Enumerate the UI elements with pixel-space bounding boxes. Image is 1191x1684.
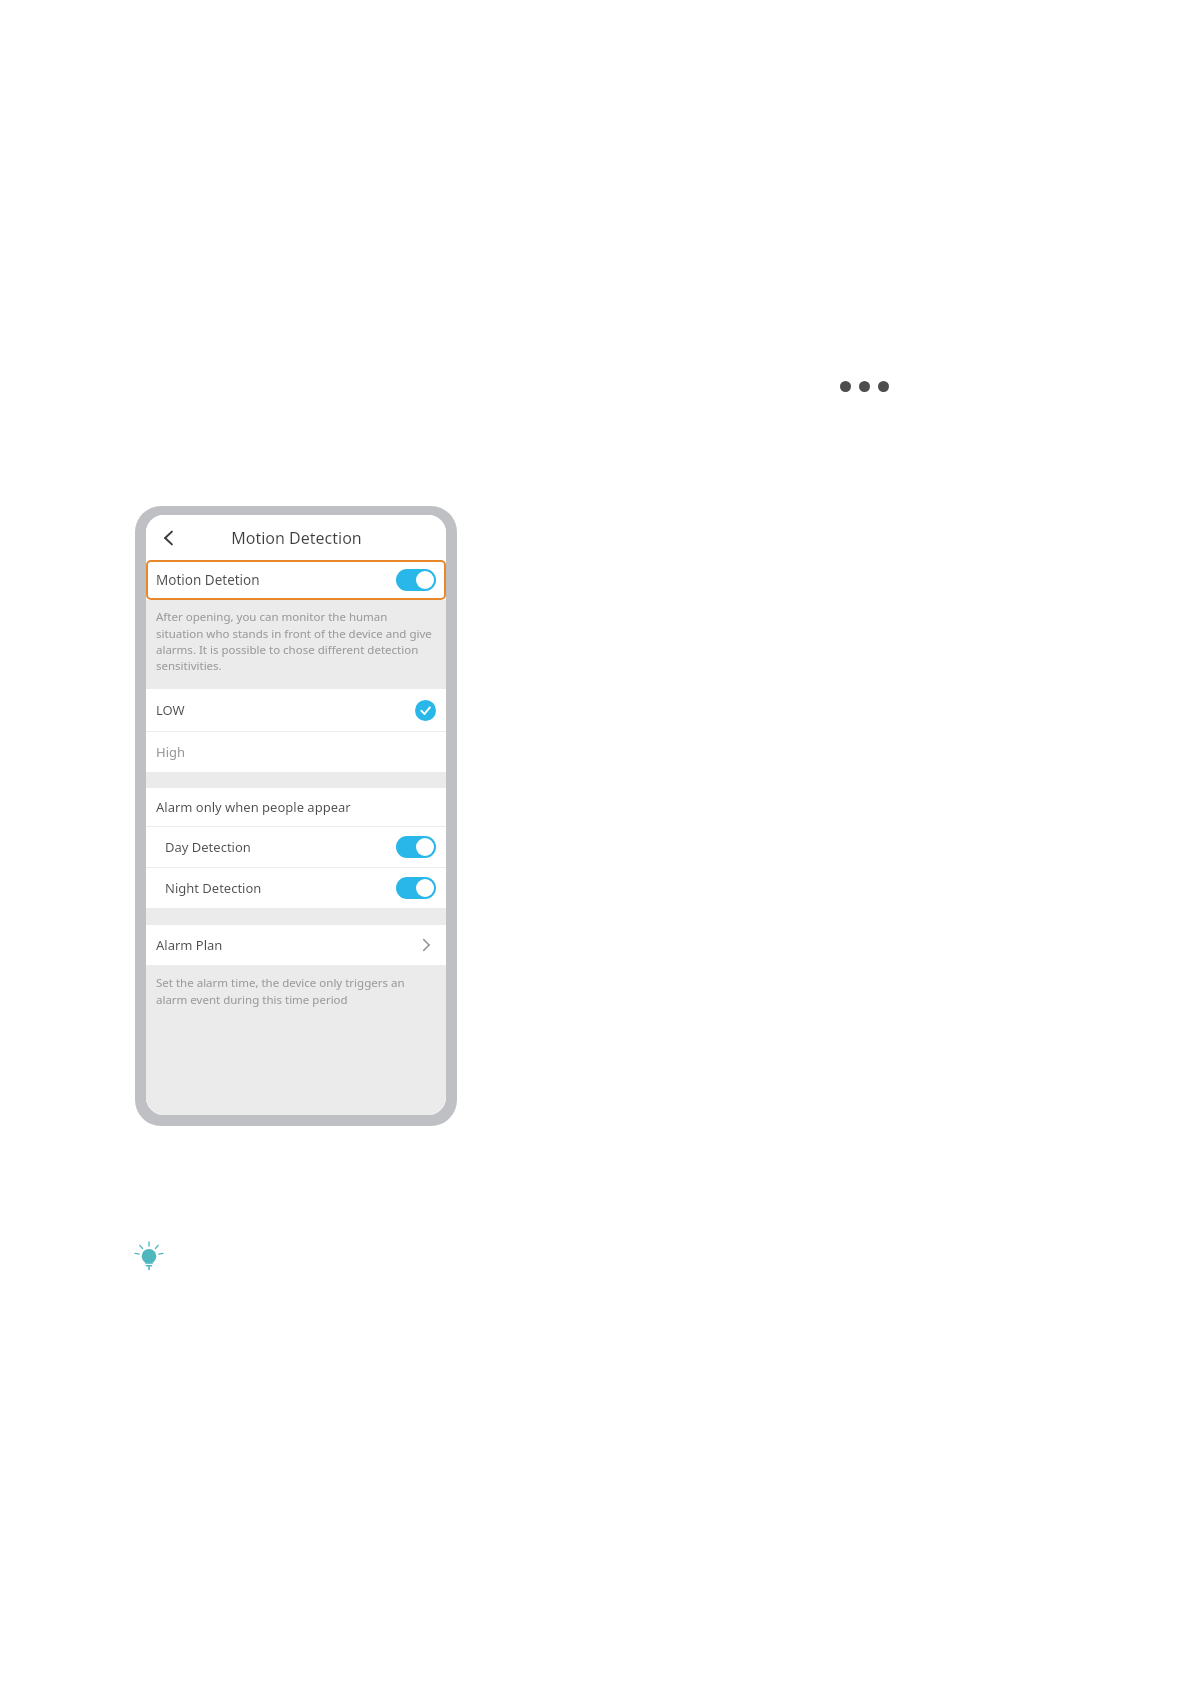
button[interactable]: Back (152, 521, 186, 555)
other: Selected (415, 700, 436, 721)
button[interactable]: Day Detection (146, 827, 446, 867)
button[interactable]: Night Detection (146, 868, 446, 908)
staticText: Day Detection (165, 838, 251, 856)
button[interactable]: Toggle on (396, 569, 436, 591)
button[interactable]: LOW (146, 689, 446, 731)
staticText: LOW (156, 701, 185, 719)
staticText: Motion Detection (231, 527, 362, 549)
button[interactable]: Alarm only when people appear (146, 788, 446, 826)
staticText: After opening, you can monitor the human… (156, 609, 436, 673)
staticText: Alarm only when people appear (156, 798, 351, 816)
button[interactable]: High (146, 732, 446, 772)
button[interactable]: Motion Detetion (146, 560, 446, 600)
staticText: Night Detection (165, 879, 262, 897)
staticText: Set the alarm time, the device only trig… (156, 975, 436, 1007)
button[interactable]: Toggle on (396, 836, 436, 858)
button[interactable]: Toggle on (396, 877, 436, 899)
staticText: Alarm Plan (156, 936, 223, 954)
button[interactable]: Alarm Plan (146, 925, 446, 965)
button[interactable]: Tip (132, 1242, 166, 1276)
staticText: Motion Detetion (156, 571, 260, 589)
other: Open alarm plan (416, 935, 436, 955)
button[interactable]: More options (840, 381, 889, 392)
staticText: High (156, 743, 186, 761)
